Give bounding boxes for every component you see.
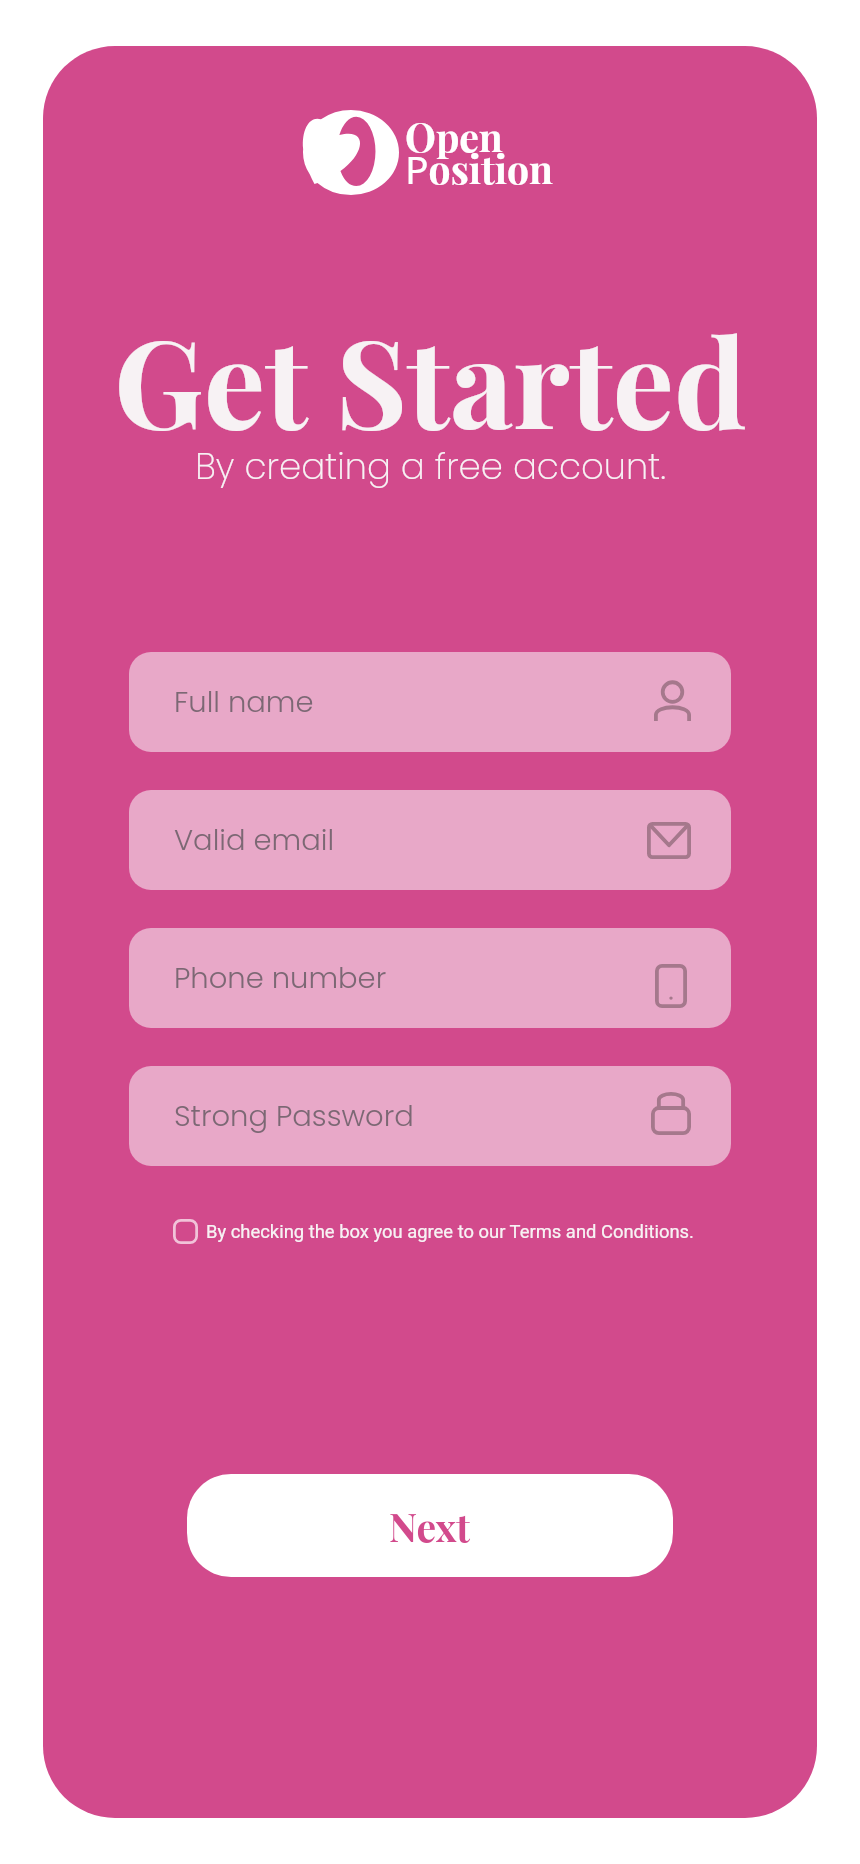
other: Email xyxy=(647,822,691,859)
staticText: Open Position xyxy=(405,110,553,195)
staticText: Get Started xyxy=(114,297,747,460)
button[interactable]: Full name xyxy=(129,652,731,752)
staticText: By creating a free account. xyxy=(195,442,666,492)
staticText: Valid email xyxy=(174,820,335,861)
button[interactable]: By checking the box you agree to our Ter… xyxy=(129,1219,731,1244)
other: Phone xyxy=(655,964,687,1008)
staticText: By checking the box you agree to our Ter… xyxy=(206,1221,694,1243)
staticText: Strong Password xyxy=(174,1096,414,1137)
other: Password xyxy=(651,1090,691,1135)
button[interactable]: Phone number xyxy=(129,928,731,1028)
button[interactable]: Next xyxy=(187,1474,673,1577)
other: Name xyxy=(654,682,691,723)
staticText: Full name xyxy=(174,682,314,723)
button[interactable]: Valid email xyxy=(129,790,731,890)
staticText: Next xyxy=(389,1500,471,1552)
staticText: Phone number xyxy=(174,958,387,999)
button[interactable]: Strong Password xyxy=(129,1066,731,1166)
